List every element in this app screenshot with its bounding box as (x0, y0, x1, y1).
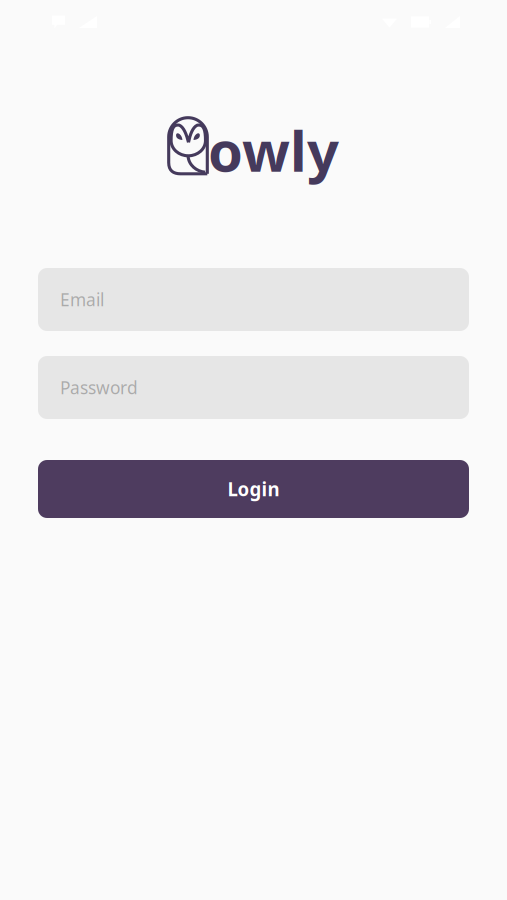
button[interactable]: Password (38, 356, 469, 419)
staticText: owly (208, 113, 339, 187)
button[interactable]: Login (38, 460, 469, 518)
staticText: Login (227, 477, 279, 501)
button[interactable]: Email (38, 268, 469, 331)
staticText: Email (60, 288, 104, 311)
staticText: Password (60, 376, 138, 399)
